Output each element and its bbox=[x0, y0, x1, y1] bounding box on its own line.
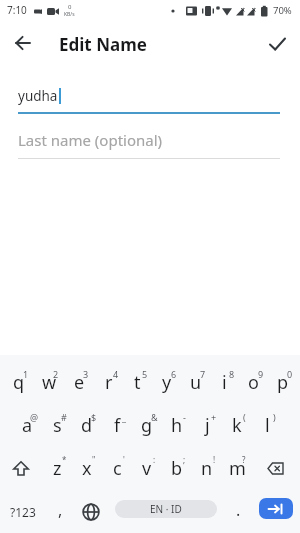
staticText: 9 bbox=[258, 368, 264, 380]
button[interactable] bbox=[0, 447, 42, 490]
staticText: m bbox=[229, 456, 246, 481]
button[interactable]: t bbox=[123, 361, 152, 404]
staticText: - bbox=[183, 411, 186, 423]
staticText: EN · ID bbox=[150, 502, 182, 516]
button[interactable]: k bbox=[222, 404, 252, 447]
staticText: b bbox=[171, 456, 183, 481]
staticText: d bbox=[81, 413, 93, 438]
staticText: 7:10 bbox=[7, 3, 27, 17]
staticText: g bbox=[141, 413, 153, 438]
staticText: 7 bbox=[200, 368, 206, 380]
button[interactable]: o bbox=[239, 361, 268, 404]
button[interactable]: f bbox=[102, 404, 132, 447]
staticText: n bbox=[201, 456, 213, 481]
staticText: + bbox=[211, 411, 217, 423]
staticText: ; bbox=[183, 454, 186, 465]
button[interactable]: u bbox=[181, 361, 210, 404]
button[interactable]: s bbox=[42, 404, 72, 447]
staticText: . bbox=[236, 499, 241, 521]
staticText: # bbox=[61, 411, 67, 423]
staticText: " bbox=[92, 454, 96, 465]
button[interactable] bbox=[252, 447, 300, 490]
staticText: ) bbox=[273, 411, 276, 423]
staticText: ? bbox=[242, 454, 246, 465]
staticText: f bbox=[114, 413, 121, 438]
button[interactable] bbox=[254, 20, 300, 66]
staticText: 70% bbox=[273, 4, 292, 17]
staticText: 1 bbox=[23, 368, 29, 380]
staticText: 3 bbox=[83, 368, 89, 380]
button[interactable]: c bbox=[102, 447, 132, 490]
button[interactable]: p bbox=[268, 361, 297, 404]
button[interactable]: j bbox=[192, 404, 222, 447]
staticText: 0 bbox=[68, 3, 72, 11]
button[interactable]: EN · ID bbox=[115, 500, 217, 518]
staticText: ( bbox=[243, 411, 246, 423]
staticText: 5 bbox=[142, 368, 148, 380]
button[interactable]: a bbox=[12, 404, 42, 447]
staticText: 0 bbox=[287, 368, 293, 380]
button[interactable]: l bbox=[252, 404, 282, 447]
staticText: x bbox=[82, 456, 92, 481]
button[interactable]: Last name (optional) bbox=[18, 130, 280, 150]
staticText: : bbox=[153, 454, 156, 465]
staticText: j bbox=[205, 413, 210, 438]
staticText: r bbox=[105, 370, 113, 395]
staticText: z bbox=[53, 456, 62, 481]
button[interactable]: n bbox=[192, 447, 222, 490]
staticText: , bbox=[58, 499, 63, 521]
button[interactable]: b bbox=[162, 447, 192, 490]
button[interactable]: y bbox=[152, 361, 181, 404]
button[interactable]: e bbox=[64, 361, 94, 404]
button[interactable]: z bbox=[42, 447, 72, 490]
staticText: i bbox=[222, 370, 227, 395]
staticText: h bbox=[171, 413, 183, 438]
button[interactable]: g bbox=[132, 404, 162, 447]
button[interactable]: v bbox=[132, 447, 162, 490]
staticText: c bbox=[113, 456, 122, 481]
button[interactable]: r bbox=[94, 361, 123, 404]
button[interactable]: . bbox=[225, 490, 252, 533]
staticText: Last name (optional) bbox=[18, 130, 163, 150]
staticText: q bbox=[13, 370, 25, 395]
button[interactable]: q bbox=[4, 361, 34, 404]
staticText: o bbox=[248, 370, 259, 395]
staticText: e bbox=[74, 370, 85, 395]
staticText: $ bbox=[91, 411, 97, 423]
button[interactable]: m bbox=[222, 447, 252, 490]
staticText: u bbox=[190, 370, 202, 395]
staticText: ?123 bbox=[10, 504, 36, 520]
staticText: s bbox=[53, 413, 62, 438]
staticText: yudha bbox=[18, 87, 58, 105]
staticText: @ bbox=[30, 411, 39, 423]
button[interactable] bbox=[0, 20, 46, 66]
button[interactable] bbox=[75, 490, 107, 533]
button[interactable]: h bbox=[162, 404, 192, 447]
button[interactable]: d bbox=[72, 404, 102, 447]
staticText: v bbox=[142, 456, 152, 481]
staticText: ' bbox=[123, 454, 125, 465]
staticText: p bbox=[277, 370, 289, 395]
button[interactable]: i bbox=[210, 361, 239, 404]
staticText: t bbox=[134, 370, 141, 395]
staticText: KB/s bbox=[64, 11, 75, 18]
staticText: y bbox=[162, 370, 172, 395]
staticText: ! bbox=[213, 454, 216, 465]
staticText: & bbox=[151, 411, 158, 423]
staticText: 2 bbox=[53, 368, 59, 380]
staticText: _ bbox=[122, 411, 126, 423]
staticText: 4 bbox=[113, 368, 119, 380]
staticText: a bbox=[22, 413, 33, 438]
staticText: l bbox=[265, 413, 270, 438]
button[interactable] bbox=[252, 490, 300, 533]
staticText: 6 bbox=[171, 368, 177, 380]
staticText: w bbox=[42, 370, 57, 395]
staticText: Edit Name bbox=[59, 33, 147, 56]
staticText: * bbox=[62, 454, 67, 465]
button[interactable]: x bbox=[72, 447, 102, 490]
button[interactable]: ?123 bbox=[0, 490, 45, 533]
button[interactable]: , bbox=[45, 490, 75, 533]
staticText: 8 bbox=[229, 368, 235, 380]
button[interactable]: yudha bbox=[18, 87, 280, 105]
button[interactable]: w bbox=[34, 361, 64, 404]
